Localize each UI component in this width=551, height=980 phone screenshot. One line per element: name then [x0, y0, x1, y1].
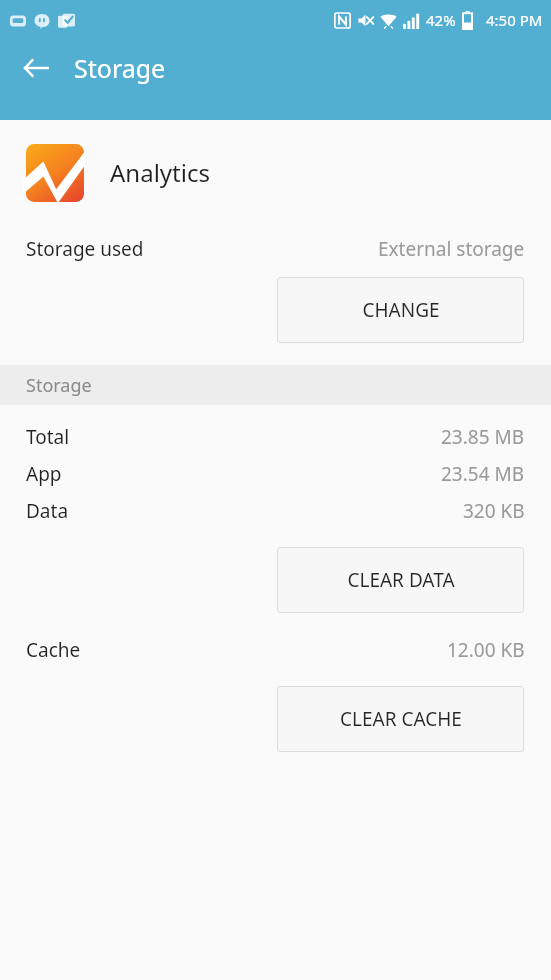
staticText: Analytics: [110, 156, 210, 189]
button[interactable]: CHANGE: [277, 277, 524, 343]
staticText: Storage used: [26, 236, 144, 262]
staticText: Total: [26, 424, 70, 450]
staticText: 320 KB: [463, 498, 525, 524]
staticText: App: [26, 461, 62, 487]
button[interactable]: CLEAR CACHE: [277, 686, 524, 752]
staticText: 42%: [426, 10, 456, 30]
staticText: Cache: [26, 637, 81, 663]
staticText: Data: [26, 498, 69, 524]
staticText: CLEAR DATA: [347, 567, 455, 593]
staticText: 23.54 MB: [441, 461, 525, 487]
button[interactable]: Back: [8, 40, 64, 96]
staticText: 12.00 KB: [447, 637, 525, 663]
staticText: CHANGE: [362, 297, 440, 323]
staticText: 23.85 MB: [441, 424, 525, 450]
staticText: CLEAR CACHE: [340, 706, 462, 732]
staticText: 4:50 PM: [486, 10, 543, 30]
button[interactable]: CLEAR DATA: [277, 547, 524, 613]
staticText: Storage: [26, 373, 92, 398]
staticText: Storage: [74, 51, 166, 85]
staticText: External storage: [378, 236, 525, 262]
